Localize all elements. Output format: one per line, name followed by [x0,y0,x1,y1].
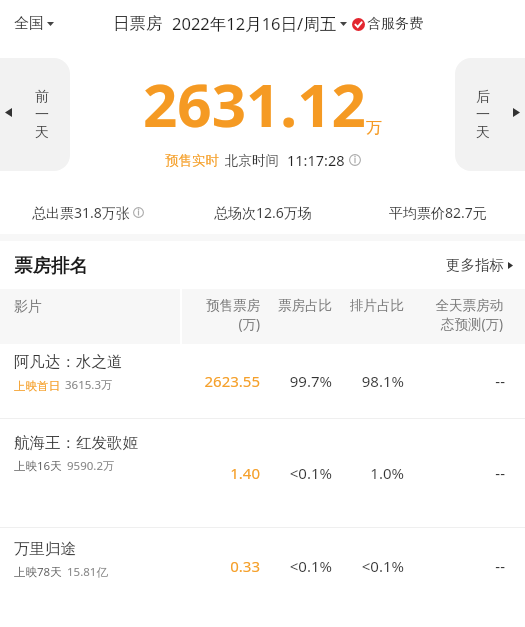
button[interactable]: 2022年12月16日/周五 [172,12,347,35]
staticText: 万 [366,118,382,138]
staticText: 9590.2万 [67,458,115,474]
staticText: 一 [35,106,49,124]
staticText: -- [404,371,505,391]
staticText: -- [404,463,505,483]
staticText: <0.1% [260,463,332,483]
staticText: 影片 [14,298,42,316]
staticText: 3615.3万 [65,377,113,393]
staticText: 北京时间 [225,152,279,169]
staticText: 1.0% [332,463,404,483]
staticText: 平均票价82.7元 [389,203,487,222]
staticText: 2623.55 [180,371,260,391]
button[interactable]: 万里归途 [0,528,525,604]
staticText: <0.1% [260,556,332,576]
staticText: 一 [476,106,490,124]
staticText: 0.33 [180,556,260,576]
staticText: 上映首日 [14,379,60,393]
staticText: 15.81亿 [67,564,108,580]
button[interactable]: 含服务费 [352,15,423,33]
staticText: <0.1% [332,556,404,576]
staticText: 前 [35,88,49,106]
button[interactable]: 前一天 [0,58,70,171]
staticText: 日票房 [113,13,163,34]
button[interactable]: 总出票31.8万张 [0,203,175,222]
staticText: -- [404,556,505,576]
staticText: 天 [35,124,49,142]
staticText: 2631.12 [143,63,366,145]
staticText: 上映78天 [14,564,62,580]
staticText: 上映16天 [14,458,62,474]
staticText: 1.40 [180,463,260,483]
staticText: 后 [476,88,490,106]
staticText: 航海王：红发歌姬 [14,433,164,453]
staticText: 更多指标 [446,256,504,274]
staticText: 票房排名 [14,254,88,277]
staticText: 99.7% [260,371,332,391]
button[interactable]: 航海王：红发歌姬 [0,419,525,527]
button[interactable]: 后一天 [455,58,525,171]
staticText: 天 [476,124,490,142]
staticText: 98.1% [332,371,404,391]
staticText: 排片占比 [332,297,404,314]
staticText: 阿凡达：水之道 [14,352,164,372]
staticText: 预售实时 [165,152,219,169]
button[interactable]: 全国 [14,14,54,33]
staticText: 全国 [14,14,44,33]
staticText: 总场次12.6万场 [214,203,312,222]
staticText: 预售票房 (万) [182,297,260,333]
staticText: 全天票房动 态预测(万) [404,297,503,333]
staticText: 票房占比 [260,297,332,314]
button[interactable]: 更多指标 [446,256,513,274]
staticText: 总出票31.8万张 [32,203,130,222]
button[interactable]: 阿凡达：水之道 [0,344,525,418]
staticText: 含服务费 [367,15,423,33]
staticText: 2022年12月16日/周五 [172,12,337,35]
staticText: 万里归途 [14,539,164,559]
staticText: 11:17:28 [287,150,345,170]
